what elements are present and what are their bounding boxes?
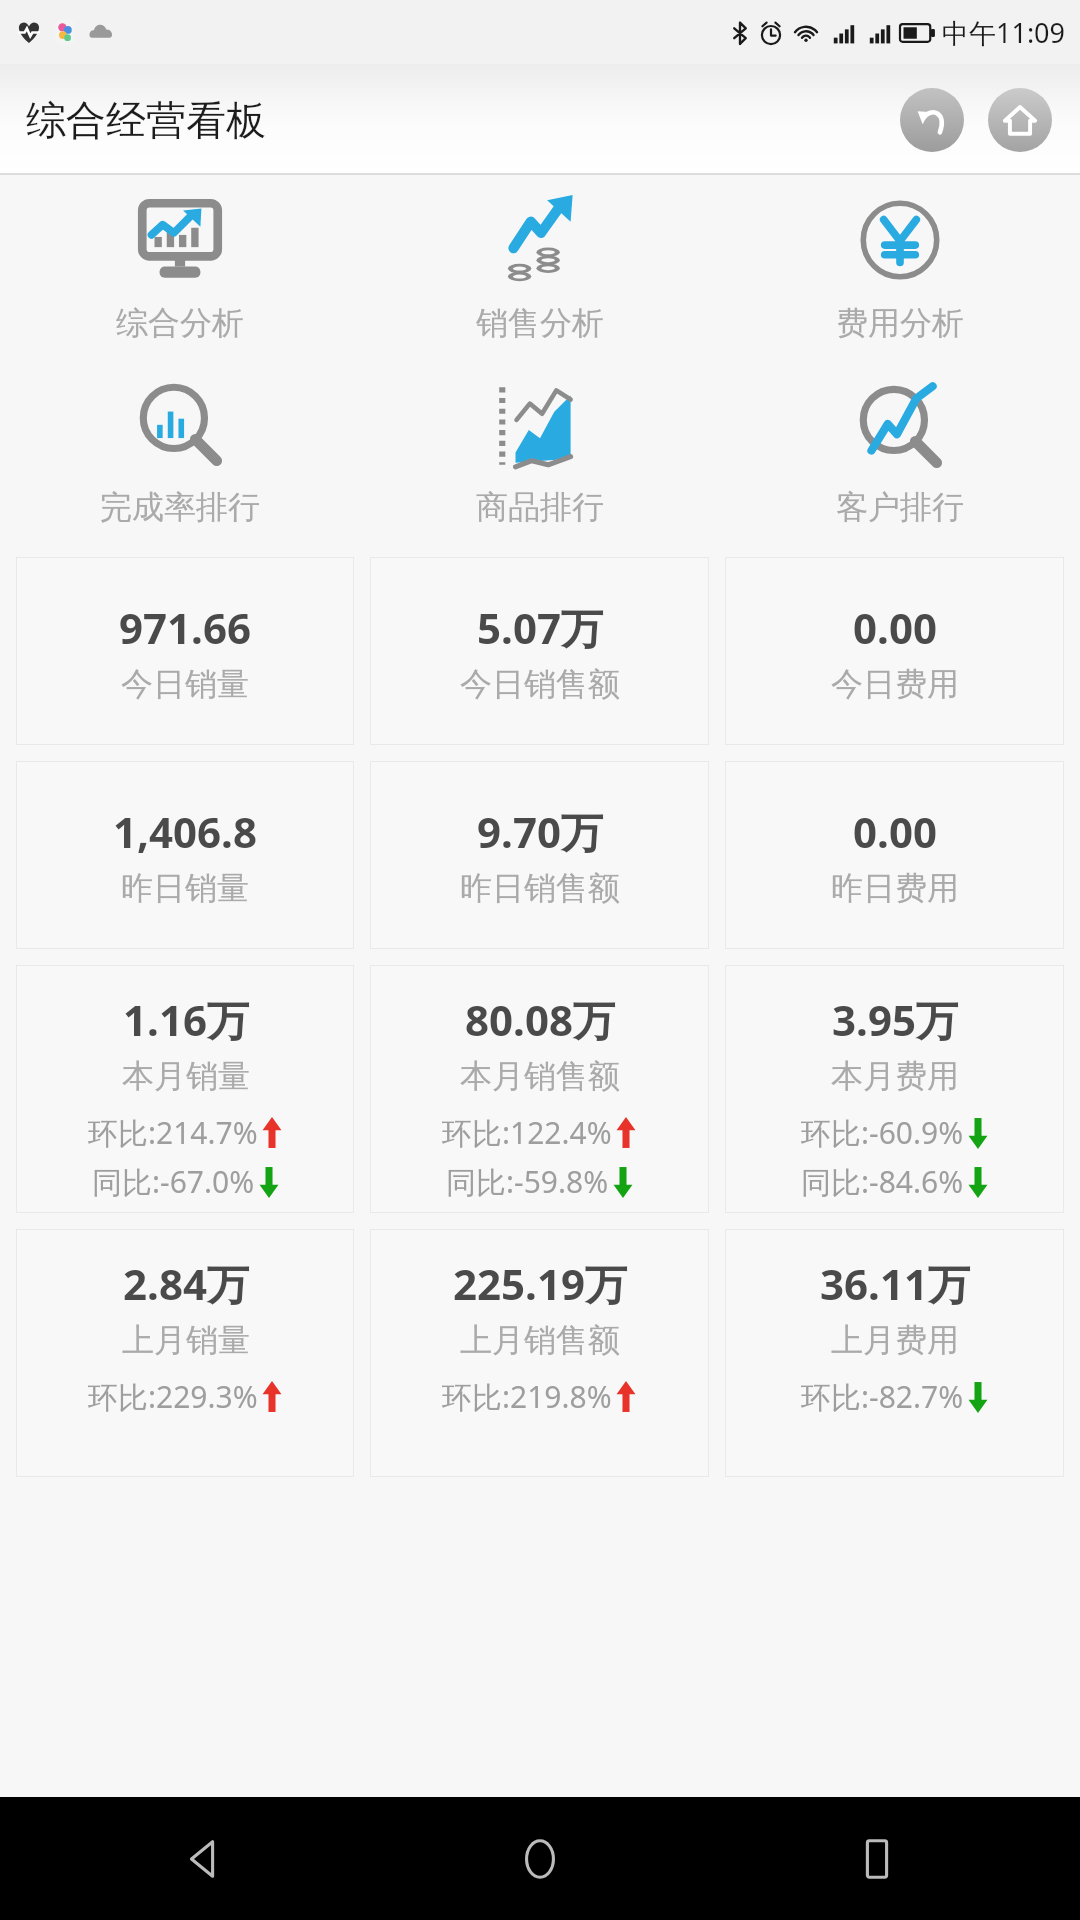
staticText: 80.08万 bbox=[465, 991, 615, 1048]
staticText: 本月销售额 bbox=[460, 1056, 620, 1096]
button[interactable]: 5.07万 bbox=[370, 557, 709, 745]
button[interactable]: 3.95万 bbox=[725, 965, 1064, 1213]
staticText: 本月费用 bbox=[831, 1056, 959, 1096]
button[interactable]: Back bbox=[160, 1816, 246, 1902]
staticText: 上月费用 bbox=[831, 1320, 959, 1360]
staticText: 今日销售额 bbox=[460, 664, 620, 704]
staticText: 0.00 bbox=[853, 599, 937, 656]
staticText: 0.00 bbox=[853, 803, 937, 860]
staticText: 同比:-59.8% bbox=[446, 1161, 609, 1202]
staticText: 费用分析 bbox=[836, 303, 964, 343]
staticText: 环比:219.8% bbox=[442, 1376, 612, 1417]
button[interactable]: 商品排行 bbox=[360, 373, 720, 527]
button[interactable]: 80.08万 bbox=[370, 965, 709, 1213]
staticText: 商品排行 bbox=[476, 487, 604, 527]
button[interactable]: 9.70万 bbox=[370, 761, 709, 949]
staticText: 今日费用 bbox=[831, 664, 959, 704]
button[interactable]: 客户排行 bbox=[720, 373, 1080, 527]
staticText: 本月销量 bbox=[122, 1056, 250, 1096]
staticText: 昨日费用 bbox=[831, 868, 959, 908]
staticText: 3.95万 bbox=[832, 991, 958, 1048]
staticText: 环比:229.3% bbox=[88, 1376, 258, 1417]
button[interactable]: 225.19万 bbox=[370, 1229, 709, 1477]
button[interactable]: 0.00 bbox=[725, 557, 1064, 745]
staticText: 5.07万 bbox=[477, 599, 603, 656]
staticText: 环比:122.4% bbox=[442, 1112, 612, 1153]
staticText: 客户排行 bbox=[836, 487, 964, 527]
button[interactable]: 综合分析 bbox=[0, 189, 360, 343]
staticText: 1.16万 bbox=[123, 991, 249, 1048]
button[interactable]: Back bbox=[900, 88, 964, 152]
staticText: 2.84万 bbox=[123, 1255, 249, 1312]
staticText: 昨日销量 bbox=[121, 868, 249, 908]
staticText: 销售分析 bbox=[476, 303, 604, 343]
button[interactable]: Recent apps bbox=[834, 1816, 920, 1902]
staticText: 225.19万 bbox=[453, 1255, 627, 1312]
staticText: 1,406.8 bbox=[113, 803, 257, 860]
staticText: 综合分析 bbox=[116, 303, 244, 343]
staticText: 36.11万 bbox=[820, 1255, 970, 1312]
staticText: 上月销量 bbox=[122, 1320, 250, 1360]
staticText: 9.70万 bbox=[477, 803, 603, 860]
button[interactable]: 1.16万 bbox=[16, 965, 354, 1213]
staticText: 同比:-67.0% bbox=[92, 1161, 255, 1202]
button[interactable]: 1,406.8 bbox=[16, 761, 354, 949]
staticText: 昨日销售额 bbox=[460, 868, 620, 908]
button[interactable]: 36.11万 bbox=[725, 1229, 1064, 1477]
button[interactable]: 完成率排行 bbox=[0, 373, 360, 527]
button[interactable]: Home bbox=[988, 88, 1052, 152]
staticText: 上月销售额 bbox=[460, 1320, 620, 1360]
button[interactable]: 0.00 bbox=[725, 761, 1064, 949]
button[interactable]: 2.84万 bbox=[16, 1229, 354, 1477]
button[interactable]: 费用分析 bbox=[720, 189, 1080, 343]
staticText: 环比:-82.7% bbox=[801, 1376, 964, 1417]
staticText: 971.66 bbox=[119, 599, 251, 656]
staticText: 环比:214.7% bbox=[88, 1112, 258, 1153]
staticText: 同比:-84.6% bbox=[801, 1161, 964, 1202]
button[interactable]: Home bbox=[497, 1816, 583, 1902]
staticText: 环比:-60.9% bbox=[801, 1112, 964, 1153]
staticText: 中午11:09 bbox=[942, 14, 1066, 51]
staticText: 综合经营看板 bbox=[26, 95, 266, 145]
staticText: 完成率排行 bbox=[100, 487, 260, 527]
staticText: 今日销量 bbox=[121, 664, 249, 704]
button[interactable]: 971.66 bbox=[16, 557, 354, 745]
button[interactable]: 销售分析 bbox=[360, 189, 720, 343]
